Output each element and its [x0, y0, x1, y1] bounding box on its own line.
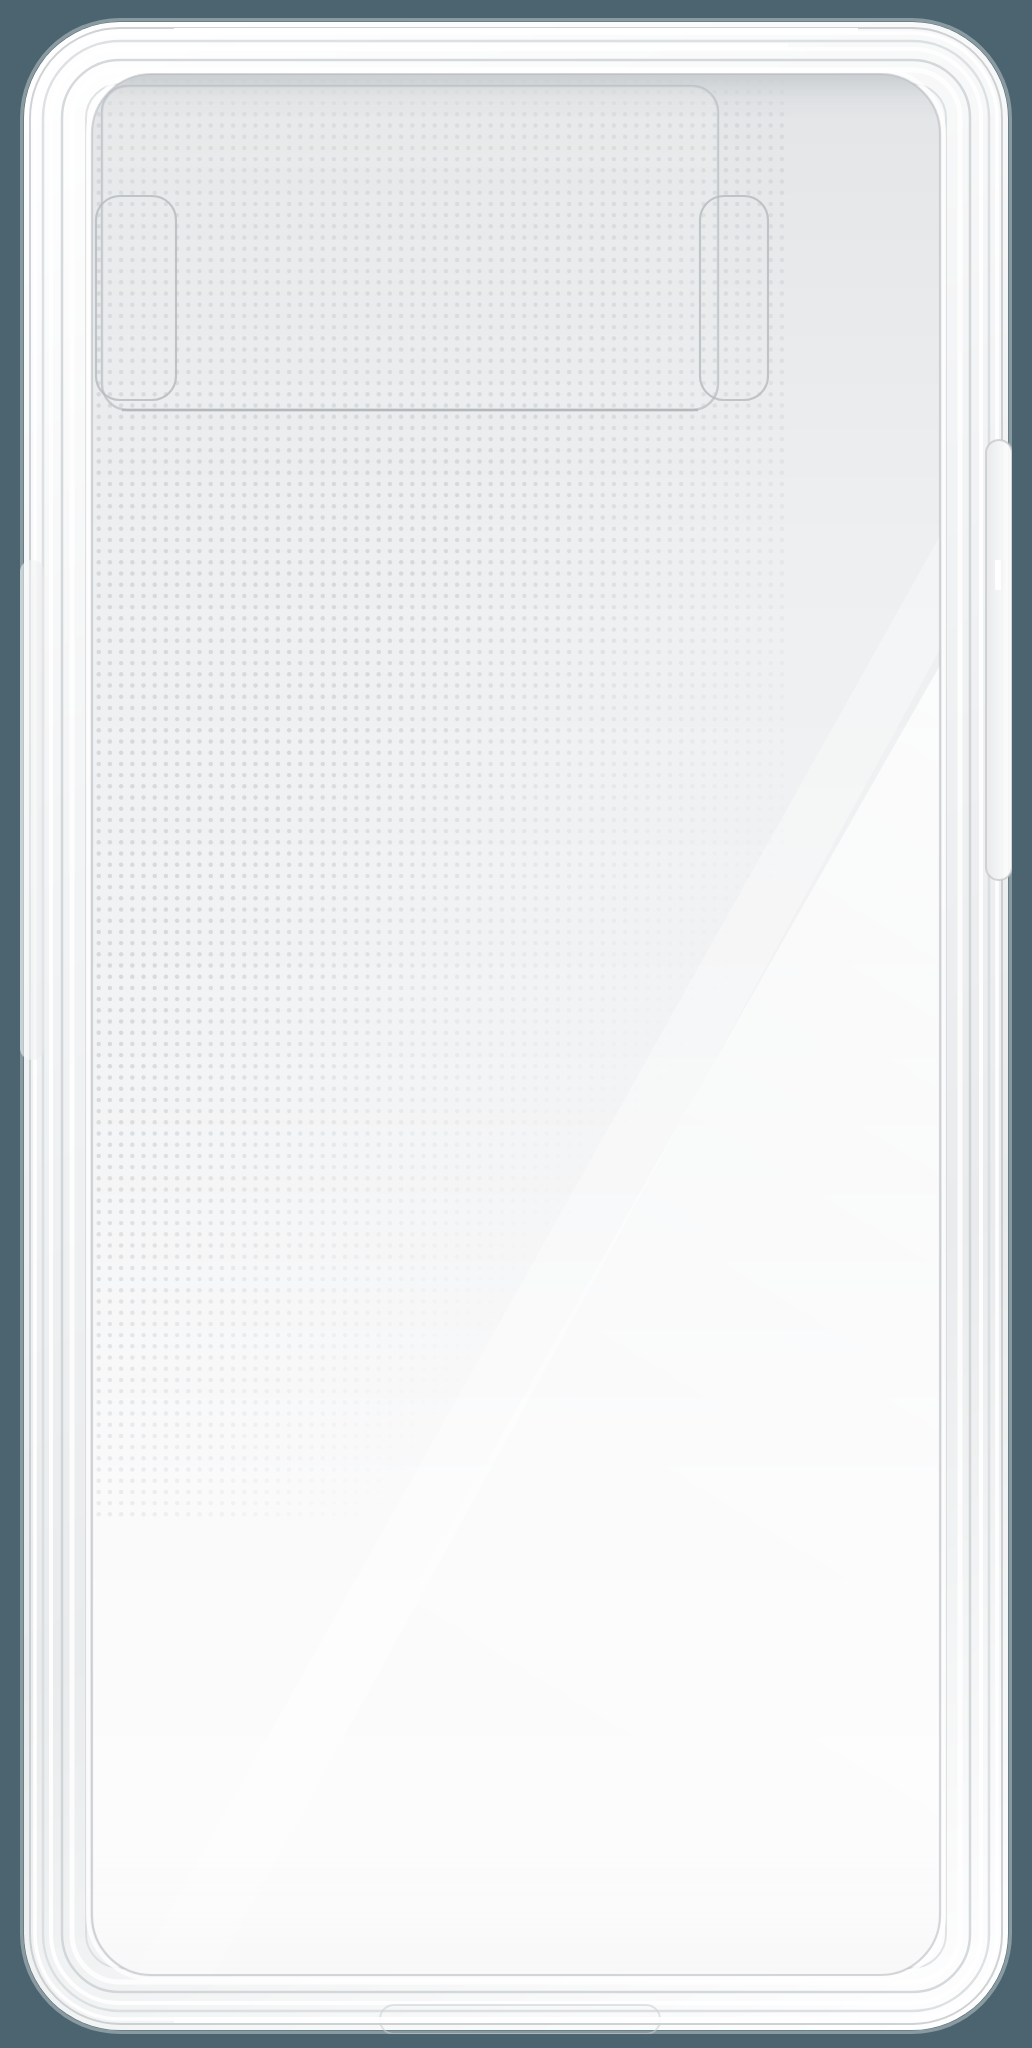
- button[interactable]: Clear phone case product image: [0, 0, 1032, 2048]
